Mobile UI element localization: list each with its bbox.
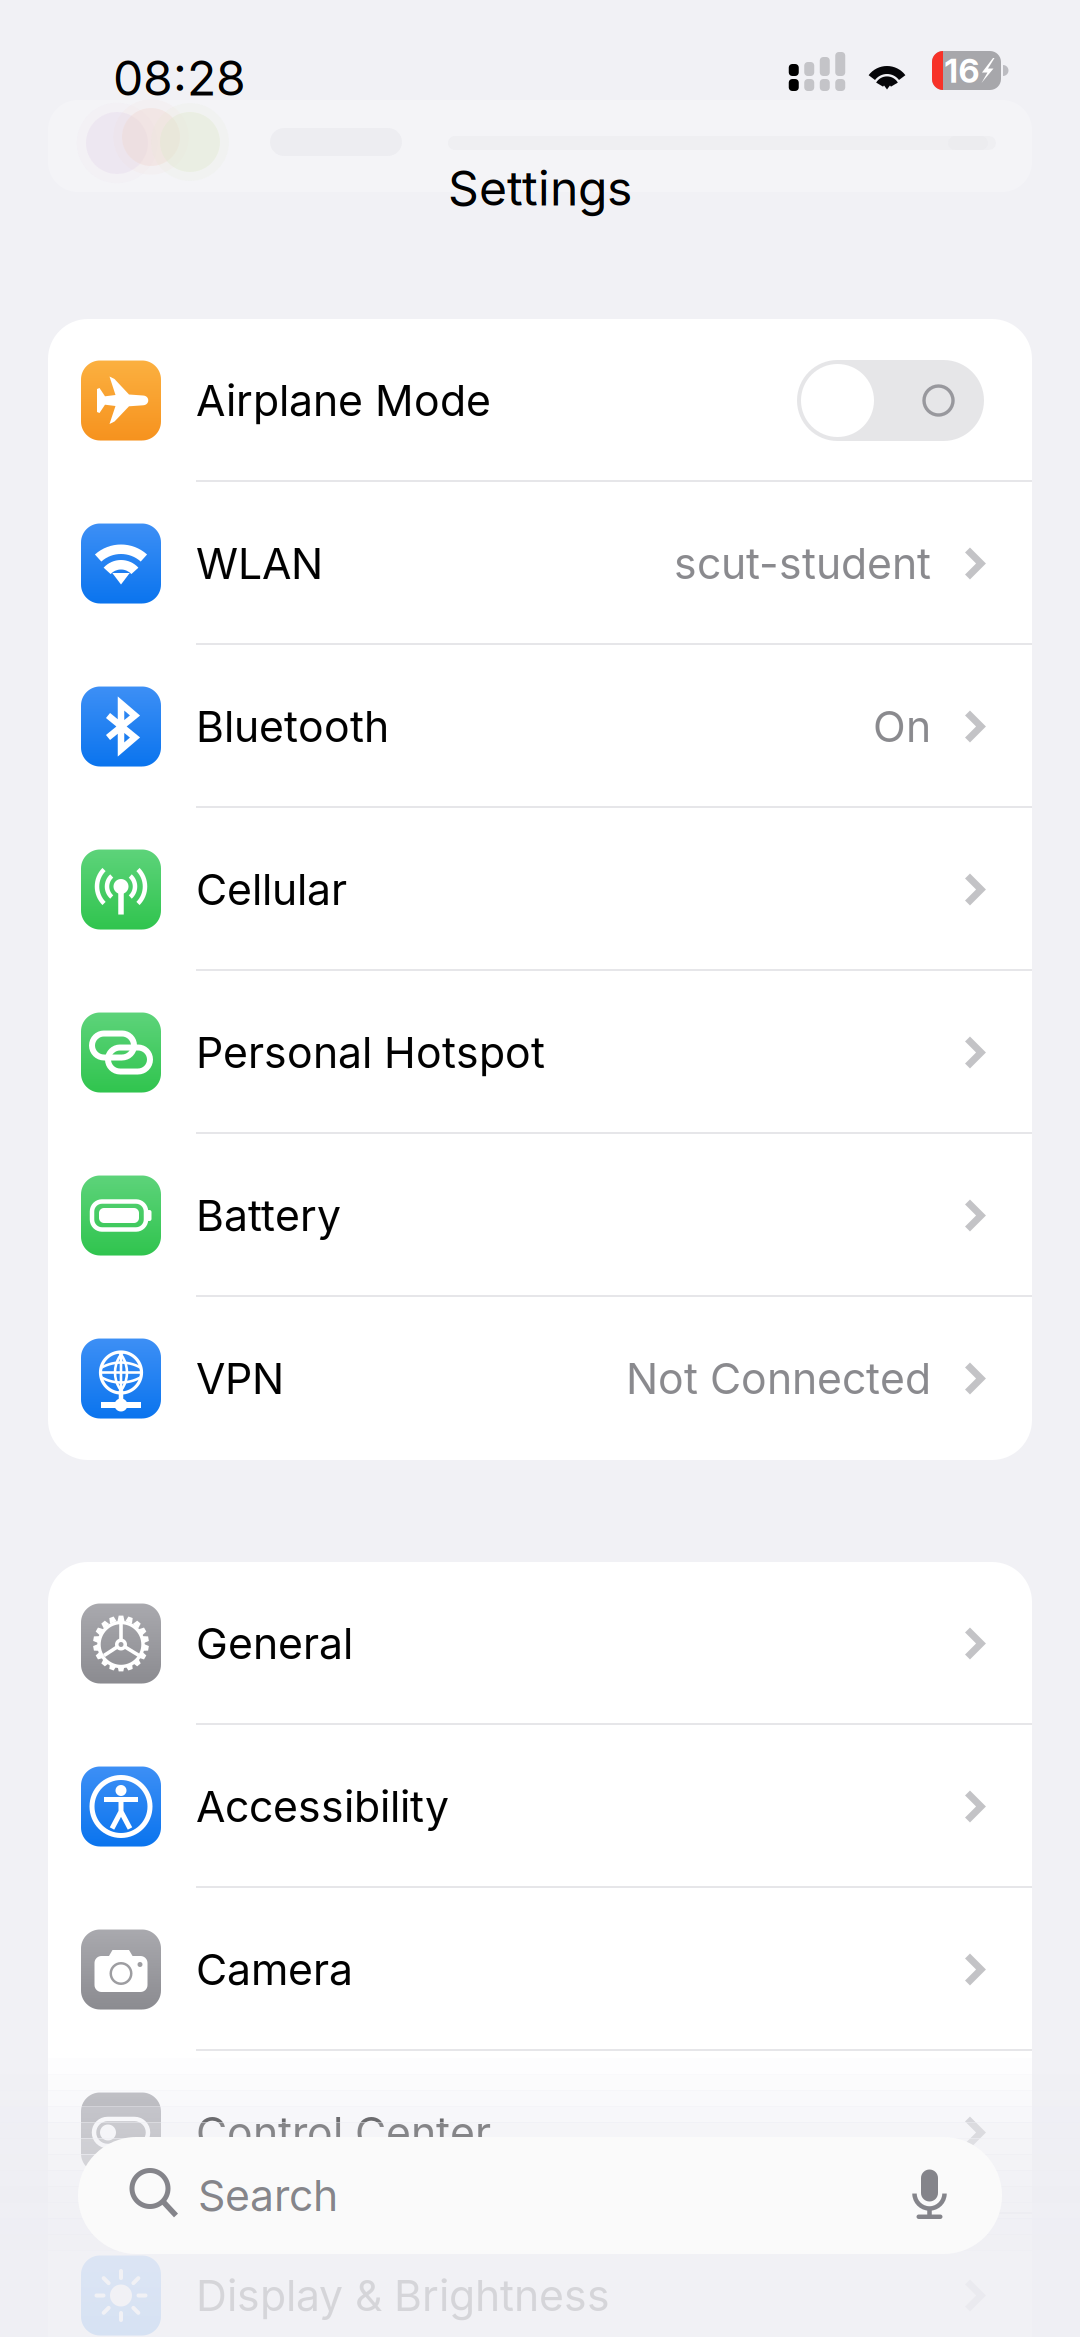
staticText: Control Center [196,2107,491,2158]
button[interactable]: Control Center [48,2051,1032,2214]
button[interactable]: General [48,1562,1032,1725]
button[interactable]: Airplane Mode [797,360,984,441]
staticText: Cellular [196,864,347,915]
staticText: VPN [196,1353,284,1404]
staticText: General [196,1618,353,1669]
staticText: Display & Brightness [196,2270,610,2321]
staticText: Airplane Mode [196,375,491,426]
staticText: Battery [196,1190,341,1241]
staticText: 08:28 [113,49,246,107]
staticText: Camera [196,1944,353,1995]
button[interactable]: Personal Hotspot [48,971,1032,1134]
staticText: Personal Hotspot [196,1027,545,1078]
button[interactable]: Cellular [48,808,1032,971]
staticText: On [873,701,931,752]
button[interactable]: Bluetooth [48,645,1032,808]
button[interactable]: Accessibility [48,1725,1032,1888]
button[interactable]: Display & Brightness [48,2214,1032,2337]
button[interactable]: VPN [48,1297,1032,1460]
button[interactable]: Search [78,2137,1002,2254]
button[interactable]: Camera [48,1888,1032,2051]
button[interactable]: WLAN [48,482,1032,645]
staticText: Search [198,2170,338,2221]
staticText: Settings [448,159,632,217]
staticText: 16 [944,50,979,91]
button[interactable]: Battery [48,1134,1032,1297]
staticText: Not Connected [626,1353,931,1404]
staticText: WLAN [196,538,323,589]
staticText: Bluetooth [196,701,389,752]
staticText: Accessibility [196,1781,449,1832]
staticText: scut-student [674,538,931,589]
button[interactable]: Airplane Mode [48,319,1032,482]
